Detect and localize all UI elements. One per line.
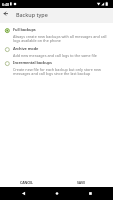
staticText: messages and call logs since the last ba… — [13, 71, 91, 76]
staticText: Archive mode — [13, 46, 39, 51]
button[interactable]: SAVE — [72, 177, 90, 188]
button[interactable]: Incremental backups — [0, 57, 113, 76]
staticText: SAVE — [77, 180, 85, 185]
button[interactable]: Full backups — [0, 24, 113, 43]
button[interactable]: CANCEL — [15, 177, 38, 188]
button[interactable]: Recent apps — [69, 187, 113, 200]
staticText: Full backups — [13, 27, 36, 32]
button[interactable]: Archive mode — [0, 43, 113, 58]
staticText: Add new messages and call logs to the sa… — [13, 53, 97, 58]
staticText: logs available on the phone — [13, 38, 61, 43]
button[interactable]: Back — [0, 187, 46, 200]
staticText: 6:48 — [2, 2, 10, 7]
staticText: Incremental backups — [13, 60, 52, 65]
staticText: CANCEL — [20, 180, 33, 185]
button[interactable]: Home — [46, 187, 69, 200]
staticText: Create new file for each backup but only… — [13, 67, 102, 72]
staticText: Backup type — [16, 11, 48, 18]
button[interactable]: Back — [0, 8, 12, 19]
staticText: Always create new backups with all messa… — [13, 34, 107, 39]
